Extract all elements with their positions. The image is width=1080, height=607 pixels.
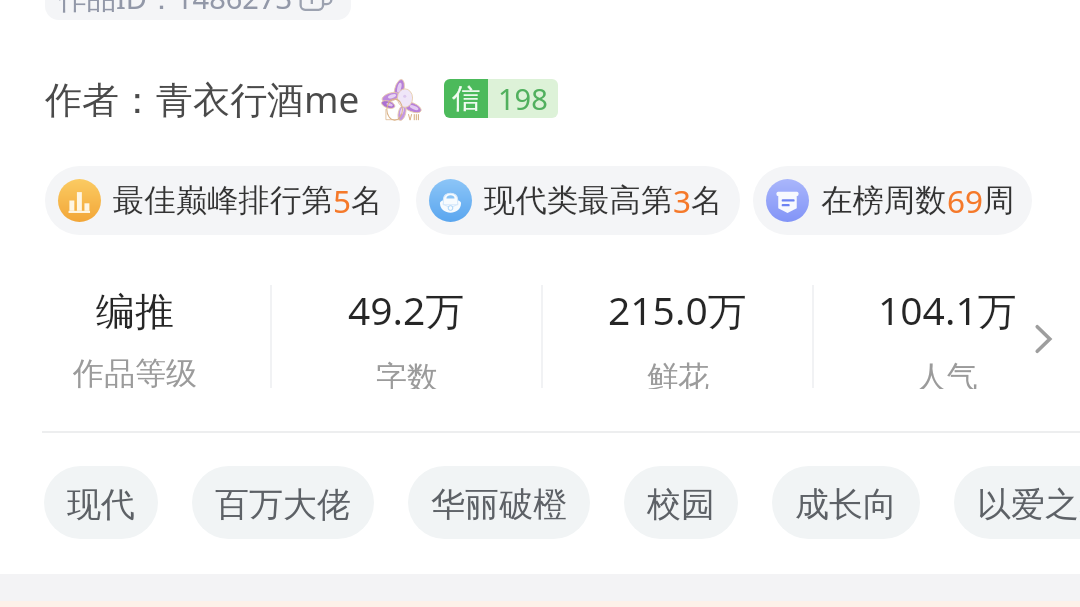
staticText: 名 bbox=[691, 181, 723, 221]
button[interactable]: 最佳巅峰排行第 bbox=[45, 166, 400, 235]
button[interactable]: 作品ID：1486273 bbox=[45, 0, 351, 20]
staticText: 信 bbox=[452, 81, 480, 116]
staticText: 现代 bbox=[67, 483, 135, 526]
staticText: 成长向 bbox=[795, 483, 897, 526]
staticText: 编推 bbox=[96, 287, 174, 336]
button[interactable]: 校园 bbox=[624, 466, 738, 539]
staticText: 104.1万 bbox=[878, 283, 1017, 336]
button[interactable]: 信 bbox=[444, 79, 558, 118]
other: Author level badge bbox=[379, 76, 425, 122]
staticText: 以爱之名 bbox=[977, 483, 1080, 526]
button[interactable]: 现代类最高第 bbox=[416, 166, 740, 235]
staticText: 5 bbox=[333, 179, 351, 222]
button[interactable]: 现代 bbox=[44, 466, 158, 539]
staticText: 作品等级 bbox=[73, 354, 197, 389]
staticText: 现代类最高第 bbox=[484, 181, 673, 221]
button[interactable]: 49.2万 bbox=[272, 283, 541, 389]
staticText: 最佳巅峰排行第 bbox=[113, 181, 333, 221]
staticText: 鲜花 bbox=[647, 358, 709, 389]
button[interactable]: 作者：青衣行酒me bbox=[45, 73, 360, 124]
staticText: 校园 bbox=[647, 483, 715, 526]
button[interactable]: 成长向 bbox=[772, 466, 920, 539]
staticText: 3 bbox=[673, 179, 691, 222]
staticText: 字数 bbox=[376, 358, 438, 389]
staticText: 名 bbox=[351, 181, 383, 221]
button[interactable]: 百万大佬 bbox=[192, 466, 374, 539]
button[interactable]: 编推 bbox=[0, 283, 270, 389]
staticText: 百万大佬 bbox=[215, 483, 351, 526]
staticText: 作者：青衣行酒me bbox=[45, 73, 360, 124]
staticText: 周 bbox=[983, 181, 1015, 221]
button[interactable]: More statistics bbox=[1009, 286, 1077, 392]
staticText: 在榜周数 bbox=[821, 181, 947, 221]
button[interactable]: 以爱之名 bbox=[954, 466, 1080, 539]
staticText: 198 bbox=[498, 79, 548, 118]
staticText: 人气 bbox=[916, 358, 978, 389]
button[interactable]: 215.0万 bbox=[543, 283, 812, 389]
staticText: 作品ID：1486273 bbox=[58, 0, 293, 18]
staticText: 215.0万 bbox=[608, 283, 747, 336]
button[interactable]: 104.1万 bbox=[814, 283, 1080, 389]
button[interactable]: 华丽破橙 bbox=[408, 466, 590, 539]
staticText: 69 bbox=[947, 179, 983, 222]
staticText: 华丽破橙 bbox=[431, 483, 567, 526]
staticText: 49.2万 bbox=[348, 283, 465, 336]
button[interactable]: 在榜周数 bbox=[753, 166, 1032, 235]
other: Copy work ID bbox=[300, 0, 332, 13]
